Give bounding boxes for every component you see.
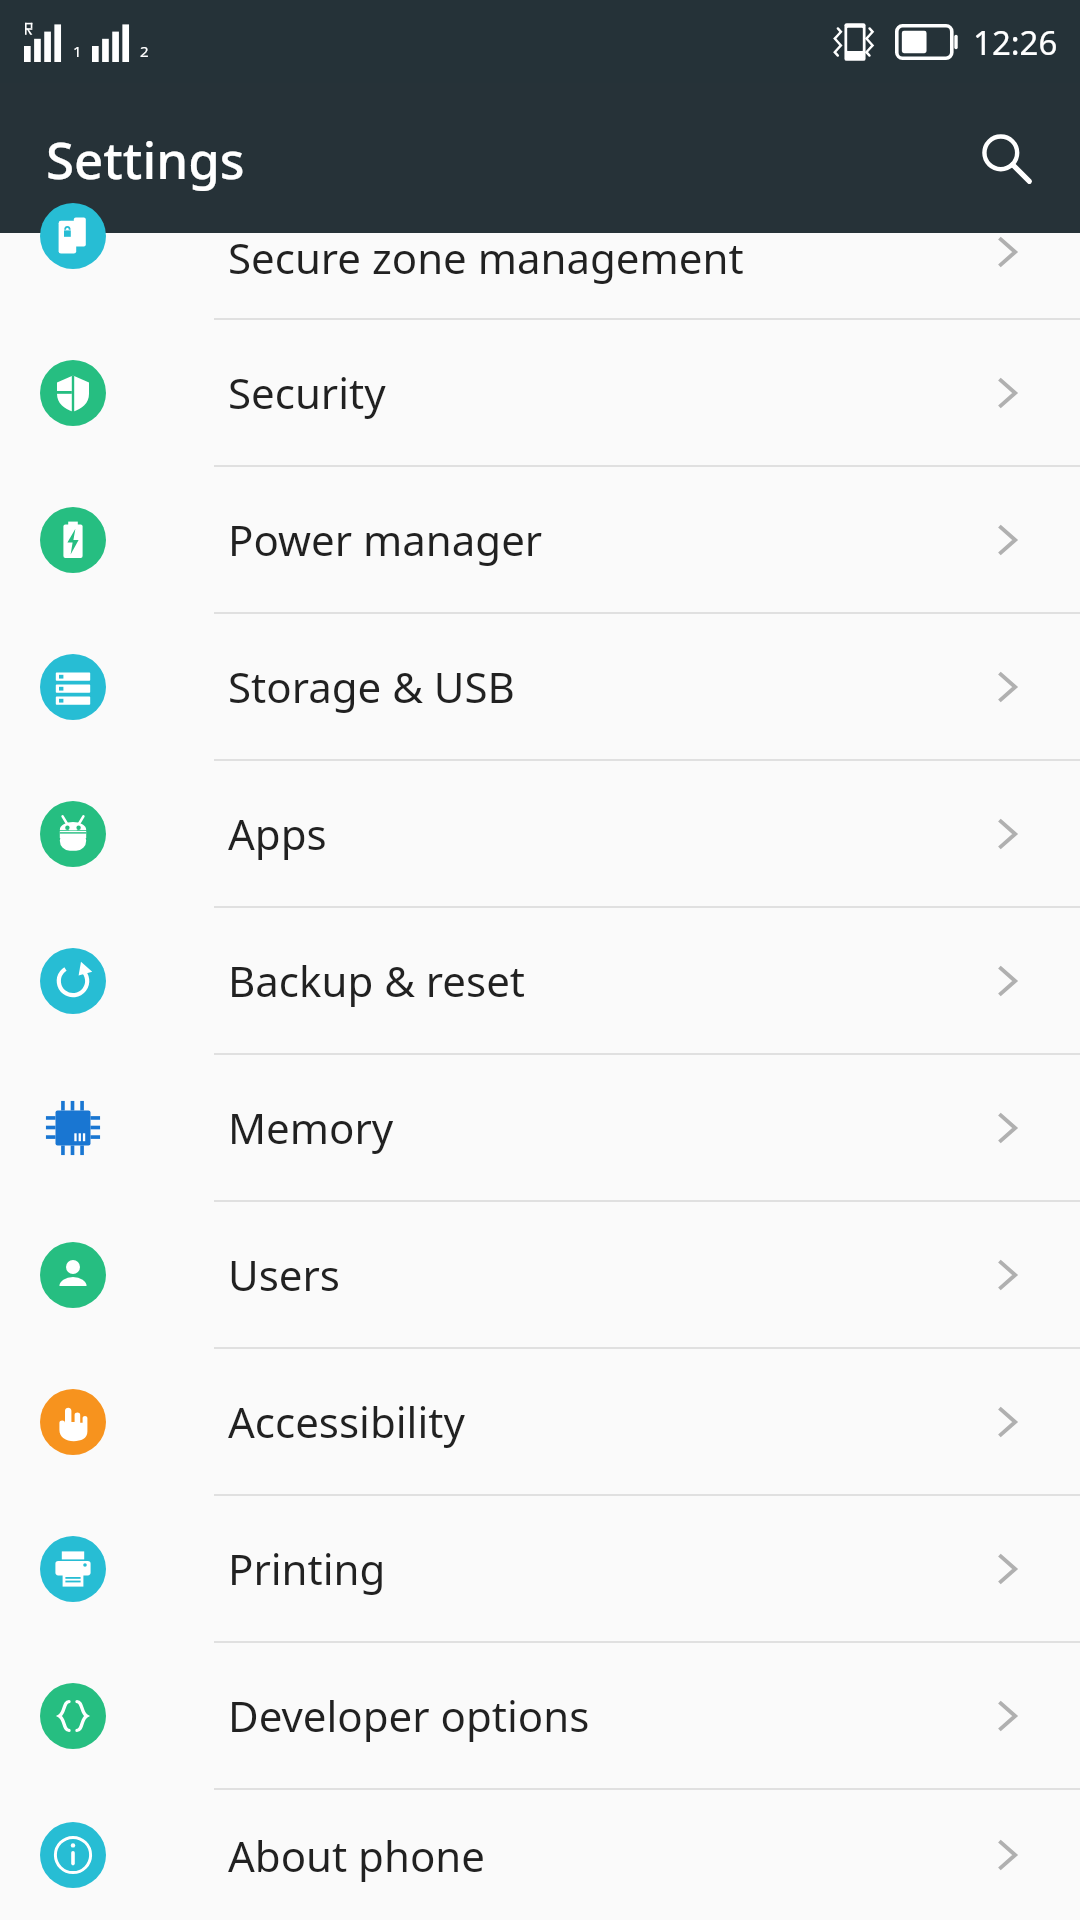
button[interactable]: Security bbox=[0, 320, 1080, 465]
staticText: Developer options bbox=[228, 1687, 590, 1744]
staticText: Settings bbox=[46, 124, 245, 193]
staticText: Power manager bbox=[228, 511, 543, 568]
staticText: Backup & reset bbox=[228, 952, 525, 1009]
staticText: About phone bbox=[228, 1827, 485, 1884]
button[interactable]: About phone bbox=[0, 1790, 1080, 1920]
button[interactable]: Users bbox=[0, 1202, 1080, 1347]
button[interactable]: Memory bbox=[0, 1055, 1080, 1200]
button[interactable]: Storage & USB bbox=[0, 614, 1080, 759]
button[interactable]: Printing bbox=[0, 1496, 1080, 1641]
staticText: 1 bbox=[73, 41, 82, 61]
staticText: Memory bbox=[228, 1099, 394, 1156]
staticText: Users bbox=[228, 1246, 340, 1303]
staticText: Printing bbox=[228, 1540, 386, 1597]
staticText: 12:26 bbox=[973, 20, 1058, 65]
staticText: Accessibility bbox=[228, 1393, 465, 1450]
staticText: Secure zone management bbox=[228, 229, 744, 286]
button[interactable]: Secure zone management bbox=[0, 233, 1080, 318]
button[interactable]: Developer options bbox=[0, 1643, 1080, 1788]
staticText: Apps bbox=[228, 805, 327, 862]
button[interactable]: Backup & reset bbox=[0, 908, 1080, 1053]
staticText: Security bbox=[228, 364, 386, 421]
button[interactable]: Power manager bbox=[0, 467, 1080, 612]
staticText: 2 bbox=[140, 41, 149, 61]
staticText: Storage & USB bbox=[228, 658, 515, 715]
button[interactable]: Accessibility bbox=[0, 1349, 1080, 1494]
button[interactable]: Search bbox=[958, 110, 1054, 206]
button[interactable]: Apps bbox=[0, 761, 1080, 906]
